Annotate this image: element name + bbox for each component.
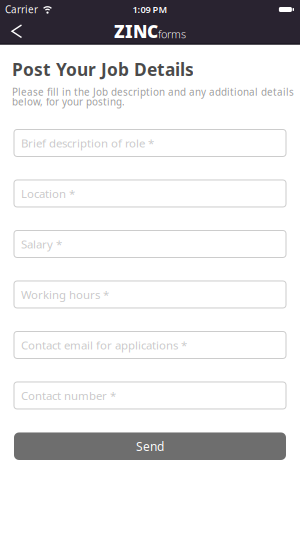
staticText: 1:09 PM	[132, 3, 167, 16]
button[interactable]: Contact email for applications *	[14, 331, 286, 358]
staticText: below, for your posting.	[12, 95, 125, 108]
button[interactable]: Back	[0, 19, 21, 43]
staticText: ZINC	[114, 19, 158, 43]
button[interactable]: Working hours *	[14, 281, 286, 308]
staticText: forms	[158, 27, 186, 42]
button[interactable]: Brief description of role *	[14, 129, 286, 156]
button[interactable]: Send	[14, 432, 286, 460]
staticText: Contact email for applications *	[21, 337, 187, 353]
staticText: Contact number *	[21, 388, 116, 403]
button[interactable]: Salary *	[14, 230, 286, 257]
staticText: Brief description of role *	[21, 135, 154, 151]
staticText: Salary *	[21, 236, 62, 252]
staticText: Carrier	[5, 3, 38, 16]
staticText: Send	[136, 438, 164, 454]
staticText: Location *	[21, 186, 75, 201]
staticText: Please fill in the Job description and a…	[12, 85, 294, 98]
staticText: Working hours *	[21, 287, 109, 302]
button[interactable]: Location *	[14, 180, 286, 207]
staticText: Post Your Job Details	[12, 57, 194, 81]
button[interactable]: Contact number *	[14, 382, 286, 409]
